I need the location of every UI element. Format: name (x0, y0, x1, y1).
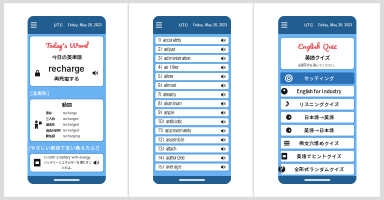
button[interactable]: Menu (28, 16, 39, 34)
button[interactable]: Play pronunciation (92, 70, 99, 76)
button[interactable]: 7) already (155, 91, 229, 99)
button[interactable]: 12) assemble (155, 136, 229, 144)
staticText: 5) allow (158, 74, 173, 79)
staticText: 全形式ランダムクイズ (294, 166, 344, 173)
staticText: 9) angle (158, 110, 174, 115)
staticText: [やさしい英語で言い換えたら?] (28, 144, 99, 151)
button[interactable]: 日本語→英語 (280, 111, 354, 123)
staticText: 例文穴埋めクイズ (299, 140, 339, 147)
staticText: 動詞 (62, 101, 72, 109)
staticText: 出題形式を選んでください。 (298, 63, 337, 67)
staticText: 15) average (158, 164, 181, 169)
staticText: Friday, May 26, 2023 (193, 23, 227, 27)
button[interactable]: 英語でヒントクイズ (280, 150, 354, 162)
staticText: とだよ。 (61, 165, 73, 170)
button[interactable]: 8) aluminum (155, 100, 229, 108)
staticText: セッティング (304, 75, 334, 82)
button[interactable]: 4) air filter (155, 64, 229, 71)
staticText: recharging (63, 134, 80, 138)
staticText: 過去形 (46, 122, 55, 127)
button[interactable]: 6) almost (155, 82, 229, 89)
staticText: 原形 (46, 111, 52, 115)
button[interactable]: 1) accurately (155, 36, 229, 44)
button[interactable]: 9) angle (155, 109, 229, 117)
button[interactable]: Menu (279, 16, 290, 34)
button[interactable]: English for Industry (280, 85, 354, 97)
staticText: 8) aluminum (158, 101, 182, 106)
staticText: 今日の英単語 (52, 53, 82, 61)
staticText: recharges (63, 117, 79, 121)
button[interactable]: Play sentence (93, 160, 99, 165)
staticText: リスニングクイズ (299, 101, 339, 108)
staticText: 13) attach (158, 146, 176, 151)
button[interactable]: リスニングクイズ (280, 98, 354, 110)
button[interactable]: 5) allow (155, 73, 229, 80)
staticText: ? (280, 165, 284, 173)
button[interactable]: 13) attach (155, 145, 229, 153)
staticText: 過去分詞形 (46, 128, 61, 133)
staticText: 7) already (158, 92, 176, 97)
staticText: English for Industry (297, 88, 342, 95)
button[interactable]: Menu (153, 16, 164, 34)
button[interactable]: 10) antibiotic (155, 118, 229, 126)
staticText: 再充電する (54, 75, 79, 82)
staticText: recharge (48, 64, 84, 74)
staticText: 1) accurately (158, 38, 181, 43)
button[interactable]: 14) authorized (155, 154, 229, 162)
staticText: recharged (63, 122, 79, 127)
staticText: 14) authorized (158, 155, 185, 160)
staticText: Friday, May 26, 2023 (68, 23, 102, 27)
staticText: UTC (179, 23, 188, 27)
staticText: 英語→日本語 (304, 127, 334, 134)
button[interactable]: 2) adjust (155, 45, 229, 53)
staticText: UTC (54, 23, 63, 27)
staticText: [活用形] (30, 90, 49, 97)
staticText: Friday, May 26, 2023 (318, 23, 352, 27)
button[interactable]: 3) administration (155, 54, 229, 62)
staticText: 12) assemble (158, 137, 184, 142)
button[interactable]: 例文穴埋めクイズ (280, 137, 354, 149)
staticText: To refill a battery with energy. (43, 155, 91, 159)
staticText: 英語クイズ (305, 53, 330, 61)
button[interactable]: ? (280, 163, 354, 175)
staticText: recharge (63, 111, 77, 115)
staticText: UTC (304, 23, 313, 27)
staticText: recharged (63, 128, 79, 132)
staticText: 3) administration (158, 56, 190, 61)
staticText: Today's Word (45, 38, 88, 51)
button[interactable]: 11) approximately (155, 127, 229, 135)
staticText: English Quiz (298, 39, 337, 52)
button[interactable]: 英語→日本語 (280, 124, 354, 136)
staticText: 英語でヒントクイズ (297, 153, 342, 160)
button[interactable]: 15) average (155, 163, 229, 171)
staticText: 日本語→英語 (304, 114, 334, 121)
staticText: バッテリーにエネルギーを満たすこ (43, 160, 91, 165)
staticText: 三人称 (46, 116, 55, 121)
staticText: 10) antibiotic (158, 119, 182, 124)
button[interactable]: セッティング (280, 72, 354, 84)
staticText: 6) almost (158, 83, 176, 88)
staticText: 11) approximately (158, 128, 191, 133)
staticText: 2) adjust (158, 47, 175, 52)
staticText: 4) air filter (158, 65, 179, 70)
staticText: 動名詞 (46, 133, 55, 138)
